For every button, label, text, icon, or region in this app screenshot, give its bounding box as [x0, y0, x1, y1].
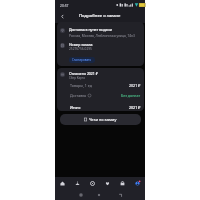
staticText: 2021 ₽ — [129, 105, 141, 110]
button[interactable]: Catalog — [70, 177, 85, 190]
staticText: 20:57 — [60, 3, 69, 7]
button[interactable]: Favorites — [100, 177, 115, 190]
button[interactable]: Back — [57, 11, 67, 21]
staticText: Товары, 1 ед — [70, 83, 92, 88]
button[interactable]: Orders — [85, 177, 100, 190]
staticText: Без доплат — [121, 93, 141, 98]
staticText: Номер заказа — [69, 42, 93, 47]
staticText: Доставка в пункт выдачи — [69, 27, 113, 32]
staticText: Доставка — [70, 93, 87, 98]
staticText: Итого — [70, 105, 81, 110]
button[interactable]: Cart — [115, 177, 130, 190]
staticText: Сбер Карта — [69, 76, 85, 80]
button[interactable]: Чеки по заказу — [60, 114, 141, 125]
staticText: Подробнее о заказе — [79, 13, 121, 19]
staticText: Россия, Москва, Люблинская улица, 74к3 — [69, 33, 135, 37]
button[interactable]: Recents — [79, 193, 83, 197]
button[interactable]: Home — [97, 193, 101, 197]
button[interactable]: Скопировать — [69, 57, 95, 63]
staticText: 25276756-0295 — [69, 47, 92, 51]
button[interactable]: Profile — [130, 177, 145, 190]
staticText: Оплачено 2021 ₽ — [69, 71, 98, 76]
staticText: Скопировать — [72, 58, 92, 62]
staticText: 2021 ₽ — [129, 83, 141, 88]
staticText: Чеки по заказу — [89, 117, 117, 122]
button[interactable]: Back — [118, 193, 122, 197]
button[interactable]: Home — [55, 177, 70, 190]
